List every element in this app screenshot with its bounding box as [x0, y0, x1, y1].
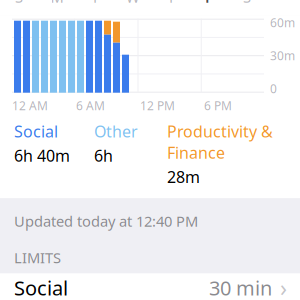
staticText: 30m: [270, 48, 295, 64]
staticText: LIMITS: [14, 248, 61, 267]
staticText: 0: [270, 81, 277, 97]
staticText: 6 AM: [76, 98, 105, 114]
staticText: 60m: [270, 15, 295, 31]
staticText: S: [15, 0, 23, 7]
staticText: 6 PM: [204, 98, 232, 114]
staticText: Updated today at 12:40 PM: [14, 211, 198, 231]
staticText: 6h 40m: [14, 145, 70, 166]
staticText: ›: [280, 273, 287, 300]
staticText: 6h: [94, 145, 113, 166]
staticText: M: [50, 0, 63, 7]
staticText: 28m: [167, 166, 200, 187]
staticText: S: [243, 0, 251, 7]
staticText: 12 PM: [140, 98, 175, 114]
staticText: Social: [14, 274, 68, 300]
staticText: T: [91, 0, 99, 7]
staticText: W: [126, 0, 140, 7]
staticText: Other: [94, 121, 138, 142]
staticText: 12 AM: [12, 98, 48, 114]
button[interactable]: Social: [0, 273, 300, 300]
staticText: Productivity & Finance: [167, 121, 273, 163]
staticText: 30 min: [209, 274, 272, 300]
staticText: F: [205, 0, 213, 7]
staticText: Social: [14, 121, 58, 142]
staticText: T: [167, 0, 175, 7]
